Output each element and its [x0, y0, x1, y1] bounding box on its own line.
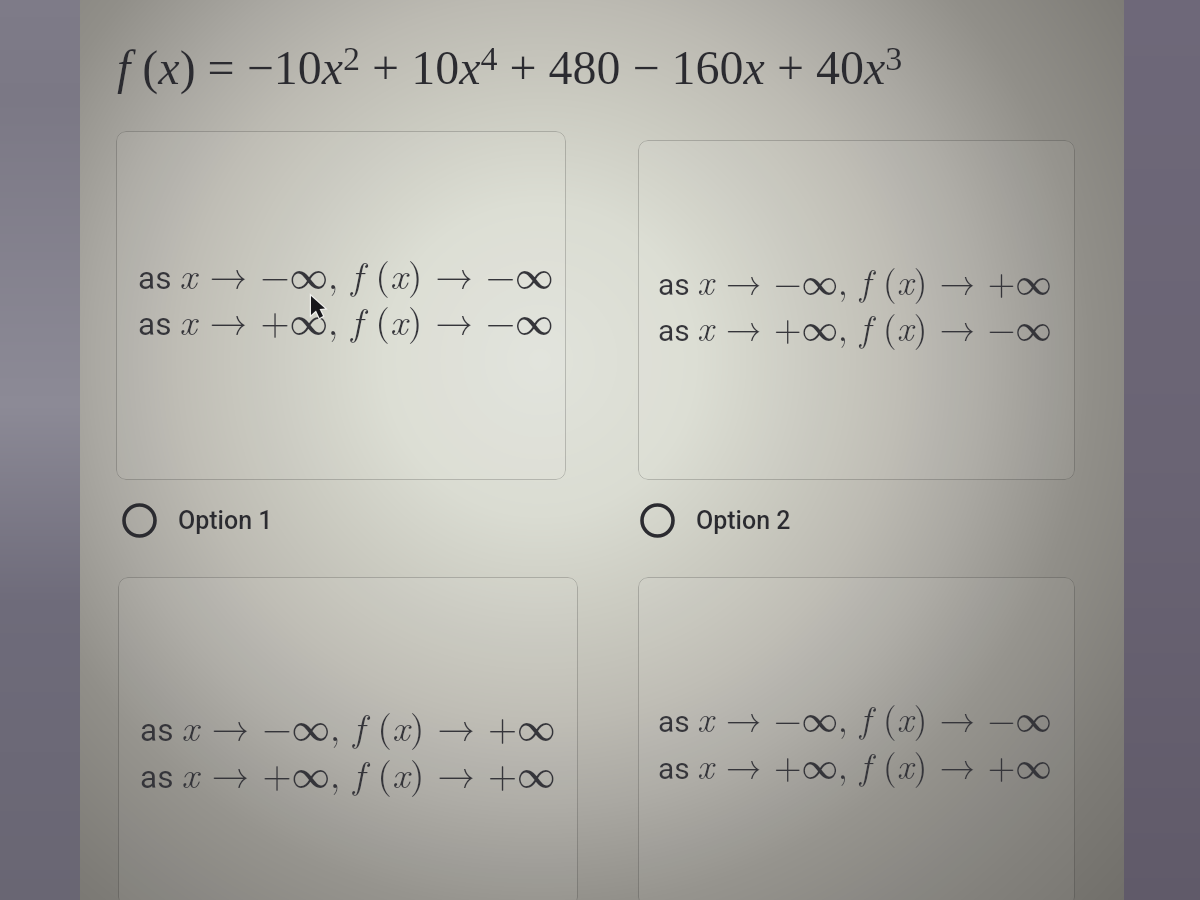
staticText: f (x) = −10x2 + 10x4 + 480 − 160x + 40x3 — [117, 40, 903, 94]
staticText: as x → −∞, f (x) → +∞ — [140, 698, 556, 752]
staticText: Option 1 — [178, 506, 273, 535]
staticText: as x → +∞, f (x) → +∞ — [658, 738, 1052, 789]
button[interactable]: as x → −∞, f (x) → −∞ — [638, 577, 1075, 900]
button[interactable]: as x → −∞, f (x) → −∞ — [116, 131, 566, 480]
button[interactable]: as x → −∞, f (x) → +∞ — [638, 140, 1075, 480]
other: Option 1 — [122, 503, 157, 538]
staticText: as x → +∞, f (x) → −∞ — [138, 292, 554, 346]
button[interactable]: as x → −∞, f (x) → +∞ — [118, 577, 578, 900]
other: Option 2 — [640, 503, 675, 538]
staticText: Option 2 — [696, 506, 791, 535]
staticText: as x → −∞, f (x) → +∞ — [658, 254, 1052, 305]
staticText: as x → +∞, f (x) → +∞ — [140, 745, 556, 799]
staticText: as x → +∞, f (x) → −∞ — [658, 300, 1052, 351]
button[interactable]: Option 2 — [640, 497, 791, 543]
staticText: as x → −∞, f (x) → −∞ — [658, 691, 1052, 742]
staticText: as x → −∞, f (x) → −∞ — [138, 246, 554, 300]
button[interactable]: Option 1 — [122, 497, 273, 543]
